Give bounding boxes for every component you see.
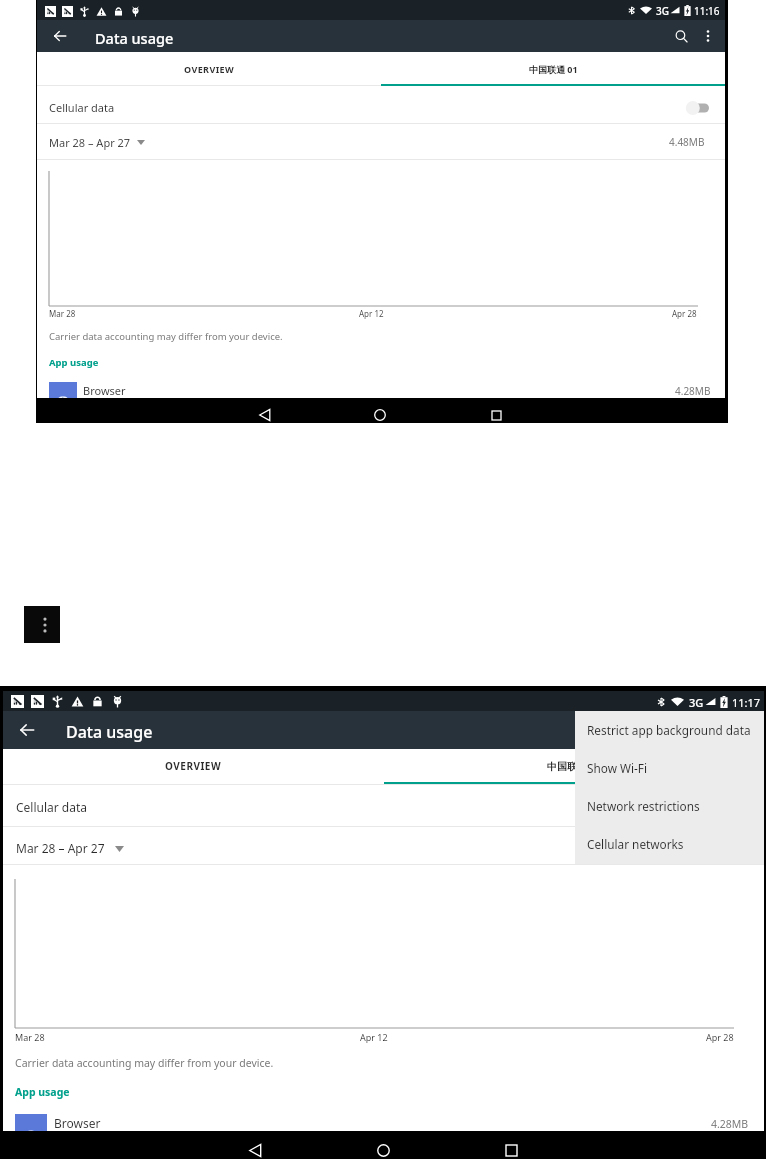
staticText: 4.28MB — [675, 384, 711, 398]
button[interactable]: Recents — [499, 1138, 524, 1159]
button[interactable]: More options — [694, 22, 722, 50]
staticText: Carrier data accounting may differ from … — [15, 1056, 274, 1070]
staticText: Mar 28 — [49, 308, 76, 319]
button[interactable]: Home — [368, 403, 392, 427]
button[interactable]: Cellular networks — [575, 825, 764, 863]
staticText: 4.48MB — [669, 135, 705, 149]
staticText: Cellular networks — [587, 836, 684, 852]
staticText: Carrier data accounting may differ from … — [49, 330, 283, 343]
button[interactable]: Restrict app background data — [575, 711, 764, 749]
button[interactable]: Home — [371, 1138, 396, 1159]
staticText: Mar 28 – Apr 27 — [49, 135, 131, 150]
button[interactable]: More options — [24, 606, 60, 643]
staticText: Apr 28 — [706, 1031, 734, 1043]
staticText: Cellular data — [16, 799, 88, 815]
staticText: Browser — [83, 383, 126, 398]
staticText: App usage — [49, 356, 99, 369]
button[interactable]: OVERVIEW — [37, 52, 381, 86]
staticText: Data usage — [66, 721, 153, 743]
staticText: Apr 12 — [360, 1031, 388, 1043]
staticText: 3G — [689, 695, 704, 708]
staticText: 中国联通 01 — [547, 759, 602, 773]
staticText: 4.28MB — [711, 1117, 749, 1131]
button[interactable]: 中国联通 01 — [384, 749, 764, 783]
staticText: 11:17 — [732, 695, 761, 708]
staticText: OVERVIEW — [165, 759, 222, 773]
staticText: OVERVIEW — [184, 63, 235, 75]
staticText: App usage — [15, 1085, 70, 1099]
button[interactable]: Browser — [3, 1108, 764, 1159]
staticText: Mar 28 – Apr 27 — [16, 840, 105, 856]
staticText: Data usage — [95, 28, 174, 48]
staticText: Mar 28 — [15, 1031, 45, 1043]
staticText: Apr 28 — [672, 308, 697, 319]
staticText: Network restrictions — [587, 798, 700, 814]
button[interactable]: 中国联通 01 — [381, 52, 725, 86]
staticText: Restrict app background data — [587, 722, 751, 738]
button[interactable]: OVERVIEW — [3, 749, 384, 783]
staticText: 11:16 — [694, 4, 720, 16]
staticText: Browser — [54, 1115, 101, 1131]
staticText: Cellular data — [49, 100, 115, 115]
button[interactable]: Back — [45, 21, 75, 51]
staticText: 3G — [656, 4, 669, 16]
button[interactable]: Show Wi-Fi — [575, 749, 764, 787]
button[interactable]: Back — [253, 403, 277, 427]
button[interactable]: Browser — [37, 377, 725, 423]
staticText: Apr 12 — [359, 308, 384, 319]
staticText: 中国联通 01 — [529, 63, 578, 75]
button[interactable]: Search — [667, 22, 695, 50]
staticText: Show Wi-Fi — [587, 760, 647, 776]
button[interactable]: Back — [11, 714, 43, 746]
button[interactable]: Network restrictions — [575, 787, 764, 825]
button[interactable] — [682, 98, 718, 118]
button[interactable]: Recents — [484, 403, 508, 427]
button[interactable]: Back — [243, 1138, 268, 1159]
